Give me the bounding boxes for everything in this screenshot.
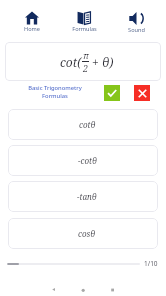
button[interactable]: −cotθ xyxy=(8,145,158,176)
button[interactable]: Sound xyxy=(110,0,162,36)
button[interactable]: Home xyxy=(72,284,94,296)
button[interactable]: Correct xyxy=(104,85,120,101)
staticText: Sound xyxy=(128,26,145,34)
button[interactable]: cosθ xyxy=(8,218,158,249)
button[interactable]: Home xyxy=(6,0,58,36)
staticText: cotθ xyxy=(79,119,96,130)
staticText: Basic Trigonometry Formulas xyxy=(28,84,82,100)
staticText: −tanθ xyxy=(77,191,97,202)
staticText: + θ) xyxy=(89,54,114,70)
staticText: cot( xyxy=(60,54,82,70)
staticText: 1/10 xyxy=(144,259,158,268)
staticText: Formulas xyxy=(72,25,97,33)
staticText: cosθ xyxy=(78,228,96,239)
button[interactable]: Back xyxy=(44,284,66,296)
staticText: −cotθ xyxy=(78,155,97,166)
button[interactable]: Wrong xyxy=(134,85,150,101)
staticText: Home xyxy=(24,25,40,33)
staticText: π xyxy=(83,49,89,61)
staticText: 2 xyxy=(83,62,89,74)
button[interactable]: Recent apps xyxy=(101,284,123,296)
button[interactable]: Formulas xyxy=(58,0,110,36)
button[interactable]: cotθ xyxy=(8,109,158,140)
button[interactable]: Basic Trigonometry Formulas xyxy=(7,84,102,100)
button[interactable]: −tanθ xyxy=(8,181,158,212)
